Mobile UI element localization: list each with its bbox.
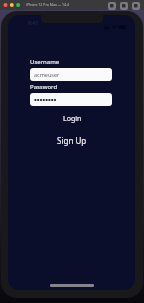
button[interactable] (108, 2, 116, 10)
button[interactable]: acmeuser (30, 68, 112, 81)
button[interactable] (30, 93, 112, 106)
button[interactable]: Login (63, 114, 82, 124)
staticText: Password (30, 83, 58, 91)
staticText: Username (30, 58, 60, 66)
button[interactable] (120, 2, 128, 10)
staticText: 9:41 (28, 20, 38, 27)
button[interactable] (132, 2, 140, 10)
staticText: acmeuser (34, 71, 60, 78)
button[interactable]: Sign Up (57, 135, 87, 146)
staticText: iPhone 12 Pro Max — 14.4 (26, 2, 70, 7)
